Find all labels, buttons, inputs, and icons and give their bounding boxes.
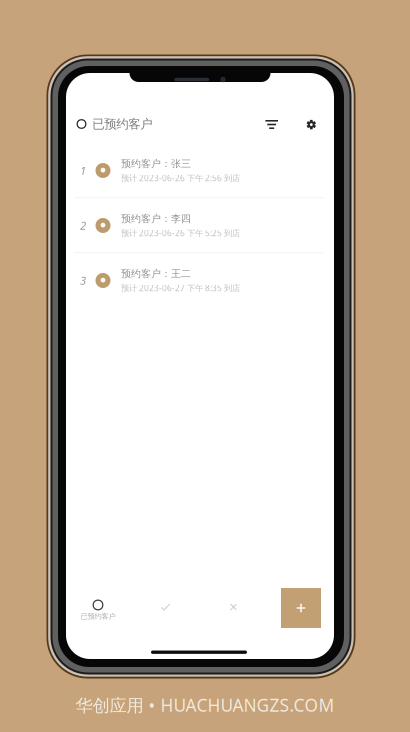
staticText: 已预约客户 — [80, 612, 115, 621]
button[interactable]: 3 — [66, 253, 334, 308]
staticText: 2 — [80, 218, 86, 233]
button[interactable]: Sort — [260, 113, 284, 135]
staticText: 已预约客户 — [92, 116, 152, 132]
button[interactable]: Confirm — [143, 587, 187, 627]
staticText: 华创应用 • HUACHUANGZS.COM — [75, 693, 334, 717]
staticText: 预计 2023-06-26 下午 5:25 到店 — [121, 227, 240, 239]
staticText: 预计 2023-06-27 下午 8:35 到店 — [121, 282, 240, 294]
button[interactable]: Cancel — [211, 587, 255, 627]
button[interactable]: 1 — [66, 143, 334, 198]
staticText: 预约客户：王二 — [121, 267, 191, 280]
button[interactable]: Settings — [299, 114, 323, 136]
staticText: 1 — [80, 163, 86, 178]
button[interactable]: 2 — [66, 198, 334, 253]
staticText: 3 — [80, 273, 86, 288]
staticText: 预约客户：张三 — [121, 157, 191, 170]
staticText: 预约客户：李四 — [121, 212, 191, 225]
button[interactable]: Add — [281, 588, 321, 628]
button[interactable]: 已预约客户 — [67, 590, 129, 630]
button[interactable]: 已预约客户 — [77, 112, 187, 136]
staticText: 预计 2023-06-26 下午 2:56 到店 — [121, 172, 240, 184]
